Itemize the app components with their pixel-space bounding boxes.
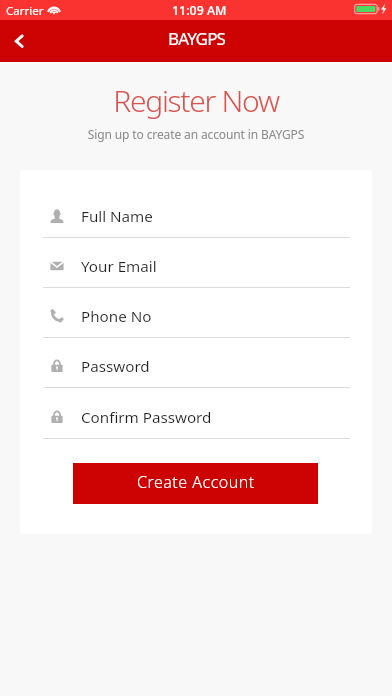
staticText: Create Account	[137, 471, 255, 493]
button[interactable]: Your Email	[50, 238, 372, 288]
button[interactable]: Confirm Password	[50, 389, 372, 439]
staticText: Carrier	[6, 3, 44, 19]
button[interactable]: Back	[2, 24, 36, 58]
staticText: 11:09 AM	[172, 2, 227, 19]
staticText: Password	[81, 356, 150, 377]
button[interactable]: Password	[50, 338, 372, 388]
staticText: BAYGPS	[168, 27, 226, 50]
staticText: Full Name	[81, 206, 153, 227]
staticText: Sign up to create an account in BAYGPS	[0, 126, 392, 142]
staticText: Your Email	[81, 256, 157, 277]
staticText: Confirm Password	[81, 407, 212, 428]
staticText: Register Now	[0, 80, 392, 121]
button[interactable]: Create Account	[73, 463, 318, 504]
button[interactable]: Full Name	[50, 188, 372, 238]
button[interactable]: Phone No	[50, 288, 372, 338]
staticText: Phone No	[81, 306, 152, 327]
